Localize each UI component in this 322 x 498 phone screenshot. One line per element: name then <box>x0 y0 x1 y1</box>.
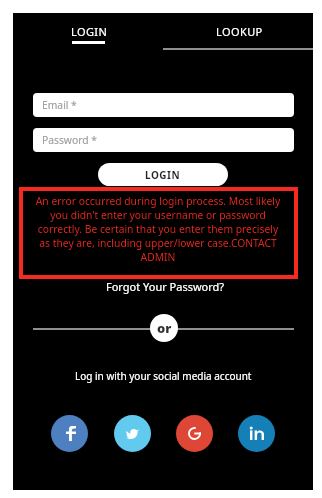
staticText: An error occurred during login process. … <box>32 194 284 264</box>
staticText: Email * <box>42 98 77 112</box>
staticText: or <box>157 319 172 337</box>
staticText: LOOKUP <box>216 24 263 39</box>
staticText: Password * <box>42 133 97 147</box>
button[interactable]: Forgot Your Password? <box>100 277 231 296</box>
staticText: LOGIN <box>145 168 181 182</box>
button[interactable]: Email * <box>33 93 294 117</box>
button[interactable]: LOOKUP <box>164 15 314 55</box>
staticText: Log in with your social media account <box>75 369 252 383</box>
button[interactable]: Facebook <box>51 415 88 452</box>
button[interactable]: LOGIN <box>98 163 228 186</box>
button[interactable]: LinkedIn <box>238 415 275 452</box>
button[interactable]: LOGIN <box>14 15 164 55</box>
button[interactable]: Google <box>176 415 213 452</box>
staticText: LOGIN <box>71 24 108 39</box>
button[interactable]: Twitter <box>114 415 151 452</box>
button[interactable]: Password * <box>33 128 294 152</box>
